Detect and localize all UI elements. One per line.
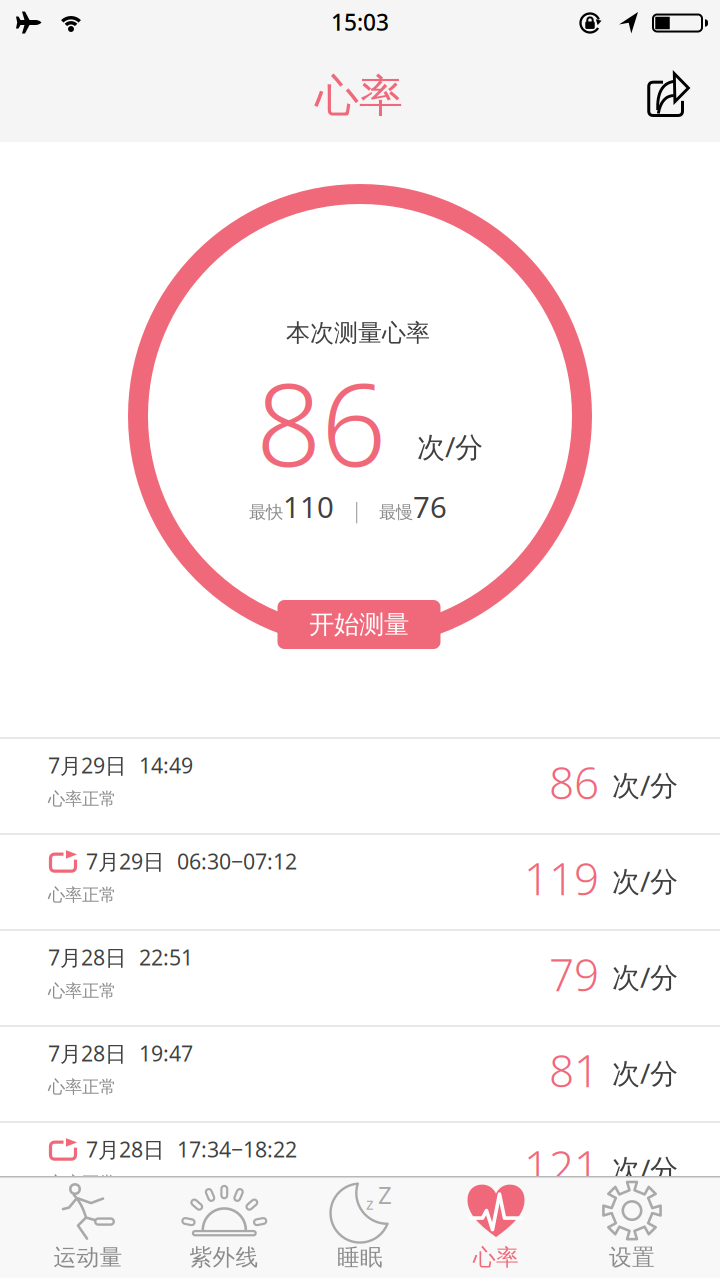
button[interactable]: 7月29日 — [0, 739, 720, 833]
button[interactable]: 开始测量 — [277, 600, 440, 649]
staticText: 次/分 — [612, 958, 678, 995]
button[interactable]: 7月28日 — [0, 1027, 720, 1121]
button[interactable]: 7月29日 — [0, 835, 720, 929]
staticText: 紫外线 — [189, 1244, 258, 1271]
staticText: 7月28日 — [48, 1039, 126, 1067]
button[interactable]: 心率 — [428, 1176, 564, 1276]
staticText: 17:34−18:22 — [177, 1135, 297, 1163]
staticText: 心率正常 — [48, 1172, 116, 1194]
button[interactable]: 7月28日 — [0, 1123, 720, 1217]
staticText: 7月29日 — [48, 751, 126, 779]
staticText: 86 — [549, 753, 599, 811]
staticText: 06:30−07:12 — [177, 847, 297, 875]
staticText: 7月29日 — [86, 847, 164, 875]
staticText: Z — [378, 1179, 392, 1210]
staticText: 14:49 — [139, 751, 193, 779]
staticText: 设置 — [609, 1244, 655, 1271]
button[interactable]: 设置 — [564, 1176, 700, 1276]
staticText: ｜ — [334, 498, 379, 524]
staticText: 次/分 — [417, 428, 483, 465]
staticText: 最快 — [249, 501, 283, 523]
staticText: 心率正常 — [48, 884, 116, 906]
staticText: 次/分 — [612, 862, 678, 899]
staticText: 76 — [413, 487, 447, 526]
staticText: 运动量 — [53, 1244, 122, 1271]
staticText: 最慢 — [379, 501, 413, 523]
staticText: 79 — [549, 945, 599, 1003]
staticText: 119 — [524, 849, 599, 907]
button[interactable]: z — [292, 1176, 428, 1276]
staticText: z — [366, 1193, 374, 1214]
button[interactable]: 7月28日 — [0, 931, 720, 1025]
staticText: 心率正常 — [48, 1076, 116, 1098]
staticText: 15:03 — [331, 7, 389, 37]
staticText: 19:47 — [139, 1039, 193, 1067]
button[interactable]: 运动量 — [20, 1176, 156, 1276]
staticText: 次/分 — [612, 766, 678, 803]
button[interactable]: 分享 — [638, 62, 700, 126]
staticText: 开始测量 — [309, 609, 409, 640]
staticText: 86 — [256, 346, 386, 498]
staticText: 本次测量心率 — [286, 318, 430, 348]
staticText: 睡眠 — [337, 1244, 383, 1271]
staticText: 心率正常 — [48, 980, 116, 1002]
staticText: 7月28日 — [86, 1135, 164, 1163]
staticText: 81 — [549, 1041, 599, 1099]
button[interactable]: 紫外线 — [156, 1176, 292, 1276]
staticText: 121 — [524, 1137, 599, 1195]
staticText: 7月28日 — [48, 943, 126, 971]
staticText: 次/分 — [612, 1150, 678, 1187]
staticText: 心率正常 — [48, 788, 116, 810]
staticText: 110 — [283, 487, 334, 526]
staticText: 心率 — [315, 69, 403, 123]
staticText: 22:51 — [139, 943, 193, 971]
staticText: 次/分 — [612, 1054, 678, 1091]
staticText: 心率 — [473, 1244, 519, 1271]
